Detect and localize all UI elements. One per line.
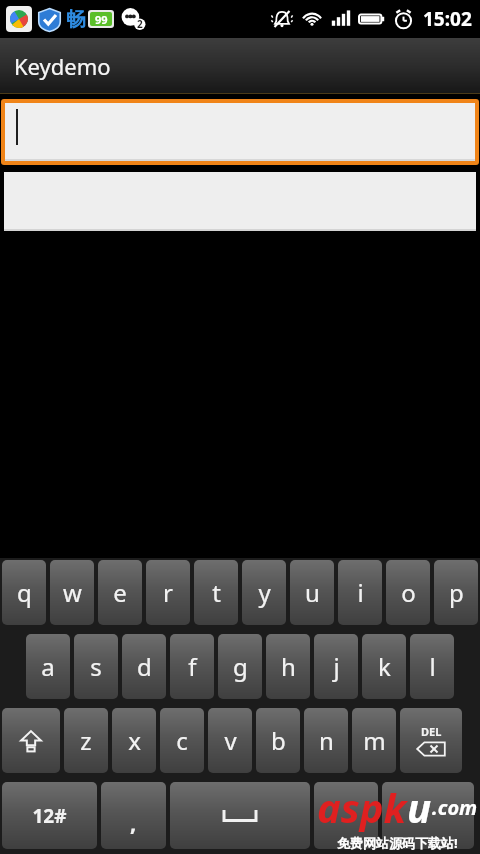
staticText: o	[401, 576, 416, 609]
staticText: n	[319, 724, 334, 757]
button[interactable]: q	[2, 560, 46, 625]
staticText: 2	[137, 17, 143, 31]
staticText: i	[357, 576, 364, 609]
staticText: w	[63, 576, 82, 609]
staticText: j	[333, 650, 340, 683]
staticText: x	[128, 724, 141, 757]
staticText: u	[305, 576, 320, 609]
staticText: 免费网站源码下载站!	[337, 834, 458, 852]
staticText: DEL	[421, 724, 442, 739]
staticText: z	[80, 724, 92, 757]
staticText: 畅	[66, 7, 86, 32]
button[interactable]: s	[74, 634, 118, 699]
staticText: s	[90, 650, 102, 683]
staticText: v	[224, 724, 237, 757]
button[interactable]: j	[314, 634, 358, 699]
staticText: c	[176, 724, 188, 757]
staticText: 15:02	[423, 6, 472, 32]
staticText: 99	[95, 12, 108, 26]
staticText: Keydemo	[14, 51, 111, 81]
staticText: 12#	[32, 803, 67, 829]
button[interactable]: x	[112, 708, 156, 773]
button[interactable]: i	[338, 560, 382, 625]
button[interactable]: Shift	[2, 708, 60, 773]
button[interactable]: f	[170, 634, 214, 699]
staticText: q	[17, 576, 32, 609]
button[interactable]: a	[26, 634, 70, 699]
button[interactable]	[382, 782, 474, 849]
button[interactable]: y	[242, 560, 286, 625]
button[interactable]: w	[50, 560, 94, 625]
staticText: l	[429, 650, 436, 683]
staticText: g	[233, 650, 248, 683]
button[interactable]: ,	[101, 782, 166, 849]
staticText: .com	[432, 794, 478, 821]
button[interactable]: n	[304, 708, 348, 773]
staticText: t	[212, 576, 221, 609]
button[interactable]: l	[410, 634, 454, 699]
button[interactable]	[4, 172, 476, 231]
button[interactable]: c	[160, 708, 204, 773]
staticText: p	[449, 576, 464, 609]
staticText: h	[281, 650, 296, 683]
button[interactable]: d	[122, 634, 166, 699]
staticText: y	[258, 576, 271, 609]
button[interactable]: e	[98, 560, 142, 625]
button[interactable]: z	[64, 708, 108, 773]
button[interactable]: o	[386, 560, 430, 625]
staticText: k	[378, 650, 391, 683]
button[interactable]: b	[256, 708, 300, 773]
button[interactable]: Space	[170, 782, 310, 849]
button[interactable]: Delete	[400, 708, 462, 773]
button[interactable]: r	[146, 560, 190, 625]
button[interactable]: u	[290, 560, 334, 625]
staticText: u	[407, 780, 432, 834]
button[interactable]: g	[218, 634, 262, 699]
button[interactable]: p	[434, 560, 478, 625]
staticText: d	[137, 650, 152, 683]
staticText: r	[163, 576, 173, 609]
staticText: aspk	[317, 780, 407, 834]
button[interactable]: m	[352, 708, 396, 773]
button[interactable]: v	[208, 708, 252, 773]
button[interactable]: 12#	[2, 782, 97, 849]
staticText: ,	[130, 807, 137, 837]
button[interactable]: t	[194, 560, 238, 625]
button[interactable]	[314, 782, 378, 849]
button[interactable]: k	[362, 634, 406, 699]
staticText: a	[41, 650, 55, 683]
staticText: f	[188, 650, 197, 683]
button[interactable]: h	[266, 634, 310, 699]
staticText: e	[113, 576, 127, 609]
button[interactable]	[5, 103, 475, 161]
staticText: m	[363, 724, 386, 757]
staticText: b	[271, 724, 286, 757]
